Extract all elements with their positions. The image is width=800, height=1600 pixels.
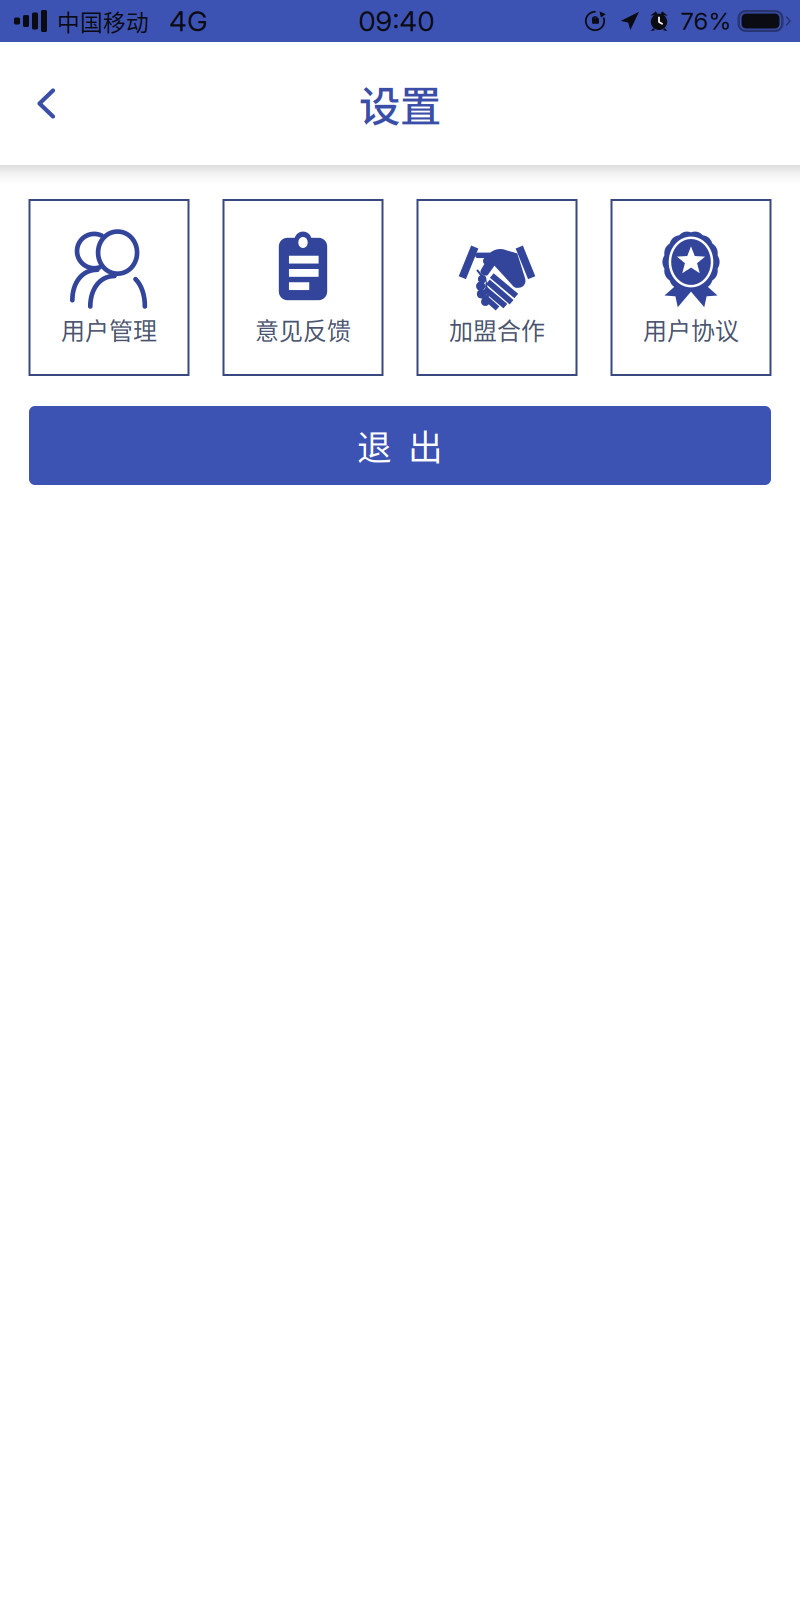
- button[interactable]: 意见反馈: [222, 199, 383, 376]
- staticText: 设置: [359, 74, 441, 133]
- button[interactable]: 退 出: [29, 406, 771, 485]
- button[interactable]: Back: [0, 62, 92, 144]
- staticText: 用户协议: [643, 312, 739, 347]
- staticText: 76%: [680, 6, 731, 35]
- staticText: 加盟合作: [449, 312, 545, 347]
- staticText: 退 出: [357, 420, 443, 471]
- button[interactable]: 加盟合作: [416, 199, 577, 376]
- button[interactable]: 用户协议: [610, 199, 771, 376]
- button[interactable]: 用户管理: [28, 199, 189, 376]
- staticText: 中国移动: [57, 5, 149, 37]
- staticText: 4G: [169, 4, 208, 38]
- staticText: 09:40: [358, 4, 434, 38]
- staticText: 用户管理: [61, 312, 157, 347]
- staticText: 意见反馈: [255, 312, 351, 347]
